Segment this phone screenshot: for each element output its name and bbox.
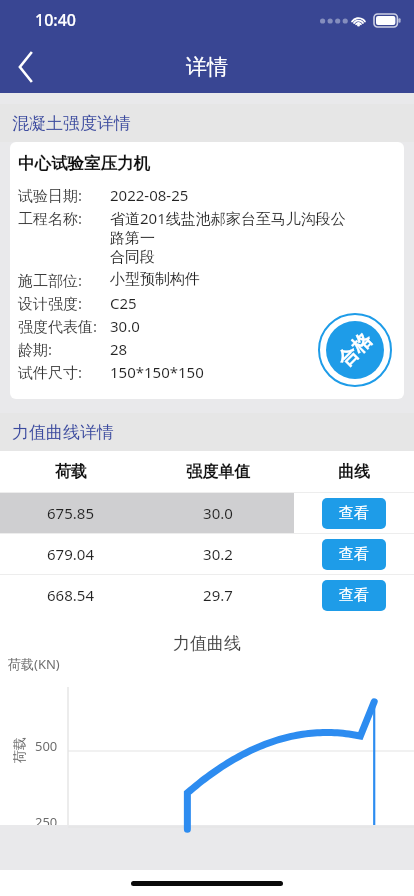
staticText: C25 [110,293,360,313]
staticText: 28 [110,339,360,359]
staticText: 30.2 [203,544,233,564]
button[interactable]: Back [0,41,52,93]
staticText: 500 [35,737,58,755]
staticText: 查看 [339,504,369,523]
staticText: 试件尺寸: [18,362,110,382]
staticText: 详情 [186,54,228,80]
staticText: 150*150*150 [110,362,360,382]
staticText: 强度代表值: [18,316,110,336]
staticText: 小型预制构件 [110,270,360,289]
staticText: 施工部位: [18,270,110,290]
staticText: 查看 [339,586,369,605]
staticText: 混凝土强度详情 [12,113,131,134]
staticText: 29.7 [203,585,233,605]
staticText: 试验日期: [18,185,110,205]
staticText: 曲线 [338,462,370,482]
staticText: 10:40 [35,9,76,31]
staticText: 龄期: [18,339,110,359]
staticText: 679.04 [47,544,94,564]
staticText: 力值曲线详情 [12,422,114,443]
button[interactable]: 查看 [322,580,386,611]
staticText: 30.0 [203,503,233,523]
staticText: 荷载 [55,462,87,482]
staticText: 荷载(KN) [8,655,60,673]
staticText: 荷载 [11,737,27,763]
staticText: 工程名称: [18,208,110,228]
staticText: 合格 [333,328,377,372]
staticText: 675.85 [47,503,94,523]
staticText: 强度单值 [186,462,250,482]
button[interactable]: 查看 [322,539,386,570]
staticText: 250 [35,813,58,825]
staticText: 中心试验室压力机 [18,153,150,174]
staticText: 668.54 [47,585,94,605]
staticText: 设计强度: [18,293,110,313]
staticText: 查看 [339,545,369,564]
staticText: 2022-08-25 [110,185,360,205]
staticText: 省道201线盐池郝家台至马儿沟段公路第一 合同段 [110,208,360,267]
button[interactable]: 查看 [322,498,386,529]
staticText: 30.0 [110,316,360,336]
staticText: 力值曲线 [173,633,241,654]
